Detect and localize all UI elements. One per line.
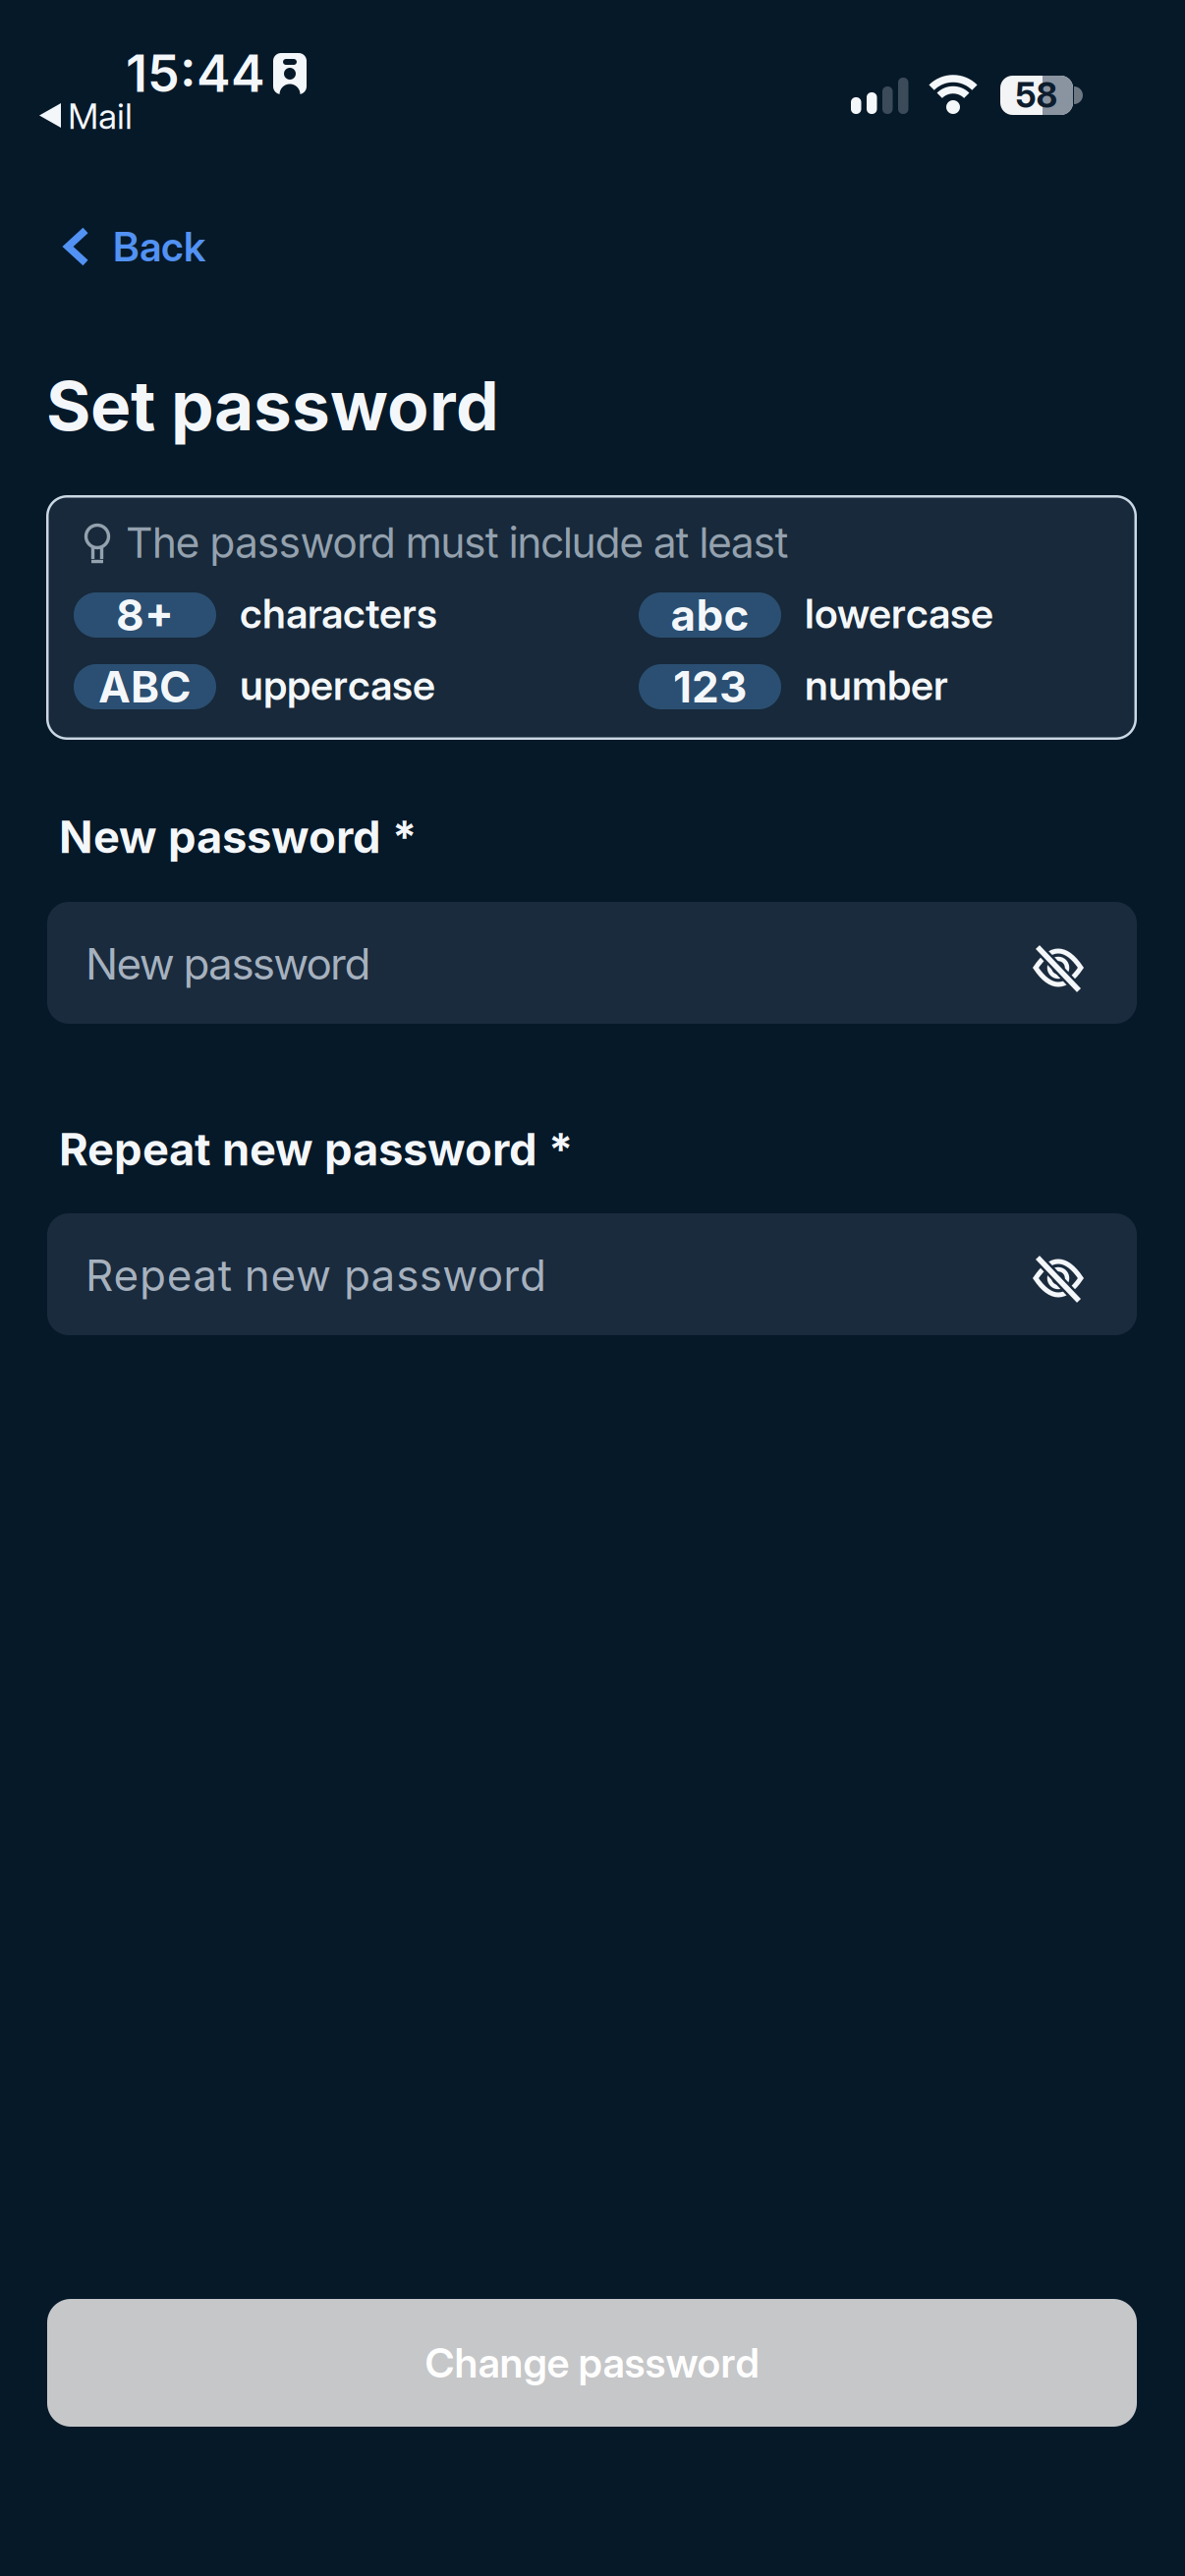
staticText: Mail: [68, 95, 133, 137]
staticText: Repeat new password *: [59, 1123, 573, 1176]
staticText: Set password: [46, 365, 499, 446]
staticText: lowercase: [805, 589, 993, 637]
staticText: 123: [673, 661, 747, 712]
staticText: New password: [85, 938, 371, 989]
staticText: Repeat new password: [85, 1250, 546, 1301]
staticText: uppercase: [240, 661, 435, 709]
staticText: characters: [240, 589, 437, 637]
staticText: 15:44: [126, 43, 265, 103]
staticText: ABC: [98, 661, 192, 712]
staticText: 8+: [116, 589, 174, 640]
staticText: Back: [113, 223, 205, 271]
staticText: 58: [1016, 75, 1058, 115]
staticText: number: [805, 661, 948, 709]
button[interactable]: Show password: [1029, 1251, 1088, 1306]
staticText: The password must include at least: [126, 518, 788, 567]
staticText: abc: [671, 589, 749, 640]
button[interactable]: Change password: [47, 2299, 1137, 2427]
button[interactable]: Show password: [1029, 940, 1088, 995]
button[interactable]: Back: [64, 223, 205, 271]
button[interactable]: Repeat new password: [47, 1213, 1137, 1335]
button[interactable]: New password: [47, 902, 1137, 1024]
staticText: New password *: [59, 811, 417, 863]
staticText: Change password: [425, 2339, 759, 2387]
